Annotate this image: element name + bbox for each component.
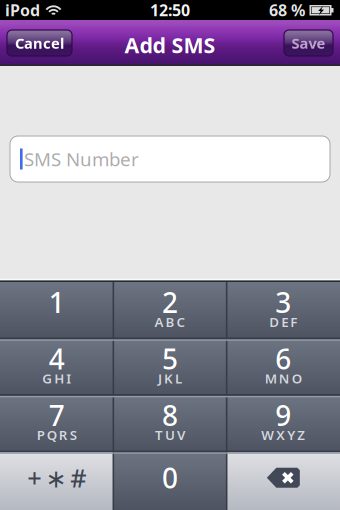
staticText: 1 — [49, 284, 65, 321]
button[interactable]: Symbols — [0, 451, 113, 510]
staticText: W X Y Z — [261, 426, 305, 444]
button[interactable]: 9 — [227, 395, 340, 451]
staticText: Cancel — [15, 33, 64, 53]
button[interactable]: 3 — [227, 282, 340, 338]
staticText: 3 — [275, 284, 291, 321]
staticText: T U V — [155, 426, 185, 444]
button[interactable]: 5 — [113, 338, 227, 395]
button[interactable]: 0 — [113, 451, 227, 510]
staticText: M N O — [265, 369, 302, 387]
staticText: D E F — [269, 313, 297, 331]
staticText: 2 — [162, 284, 178, 321]
button[interactable]: 7 — [0, 395, 113, 451]
staticText: SMS Number — [24, 147, 139, 171]
button[interactable]: 1 — [0, 282, 113, 338]
button[interactable]: 6 — [227, 338, 340, 395]
staticText: A B C — [154, 313, 185, 331]
staticText: 0 — [162, 459, 178, 496]
staticText: 68 % — [269, 0, 305, 21]
staticText: J K L — [158, 369, 182, 387]
staticText: 12:50 — [150, 0, 190, 21]
button[interactable]: Cancel — [7, 30, 72, 56]
staticText: Save — [291, 33, 325, 53]
staticText: 8 — [162, 397, 178, 434]
button[interactable]: Delete — [227, 451, 340, 510]
staticText: 7 — [49, 397, 65, 434]
staticText: + ∗ # — [27, 461, 86, 494]
staticText: P Q R S — [37, 426, 77, 444]
staticText: 6 — [275, 340, 291, 377]
button[interactable]: 2 — [113, 282, 227, 338]
button[interactable]: Save — [284, 30, 333, 56]
staticText: 9 — [275, 397, 291, 434]
staticText: iPod — [5, 0, 40, 21]
staticText: Add SMS — [124, 31, 215, 59]
staticText: 5 — [162, 340, 178, 377]
button[interactable]: 8 — [113, 395, 227, 451]
button[interactable]: 4 — [0, 338, 113, 395]
staticText: G H I — [42, 369, 71, 387]
button[interactable]: SMS Number — [10, 136, 330, 182]
staticText: 4 — [49, 340, 65, 377]
